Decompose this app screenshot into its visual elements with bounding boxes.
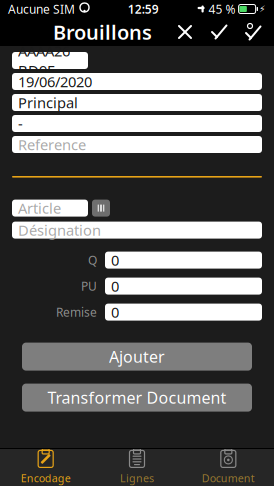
button[interactable]: Scanner code-barres xyxy=(92,200,110,217)
staticText: 45 % xyxy=(209,1,236,17)
staticText: ⚡︎ xyxy=(259,4,266,14)
staticText: Document xyxy=(202,471,255,485)
button[interactable]: Encodage xyxy=(0,448,91,486)
button[interactable]: Fermer xyxy=(168,18,202,46)
staticText: AAAA26BD9F xyxy=(18,41,70,80)
staticText: 0 xyxy=(111,250,119,270)
staticText: Encodage xyxy=(21,471,71,485)
staticText: - xyxy=(18,114,23,133)
staticText: Transformer Document xyxy=(47,387,226,408)
staticText: Brouillons xyxy=(53,19,152,45)
staticText: Principal xyxy=(18,93,78,112)
staticText: 0 xyxy=(111,302,119,322)
staticText: Remise xyxy=(56,304,97,320)
staticText: 19/06/2020 xyxy=(18,72,92,91)
staticText: Q xyxy=(88,252,97,268)
staticText: Reference xyxy=(18,135,86,154)
button[interactable]: Ajouter xyxy=(22,343,252,371)
staticText: Désignation xyxy=(18,220,101,240)
staticText: PU xyxy=(81,278,97,294)
button[interactable]: Valider et nouveau xyxy=(236,18,270,46)
staticText: Aucune SIM xyxy=(8,1,75,17)
staticText: 0 xyxy=(111,276,119,296)
staticText: Ajouter xyxy=(109,346,165,367)
button[interactable]: Transformer Document xyxy=(22,384,252,412)
button[interactable]: Valider xyxy=(202,18,236,46)
staticText: Article xyxy=(18,198,61,218)
staticText: Lignes xyxy=(120,471,154,485)
button[interactable]: Document xyxy=(183,448,274,486)
button[interactable]: Lignes xyxy=(91,448,183,486)
staticText: 12:59 xyxy=(128,1,159,17)
